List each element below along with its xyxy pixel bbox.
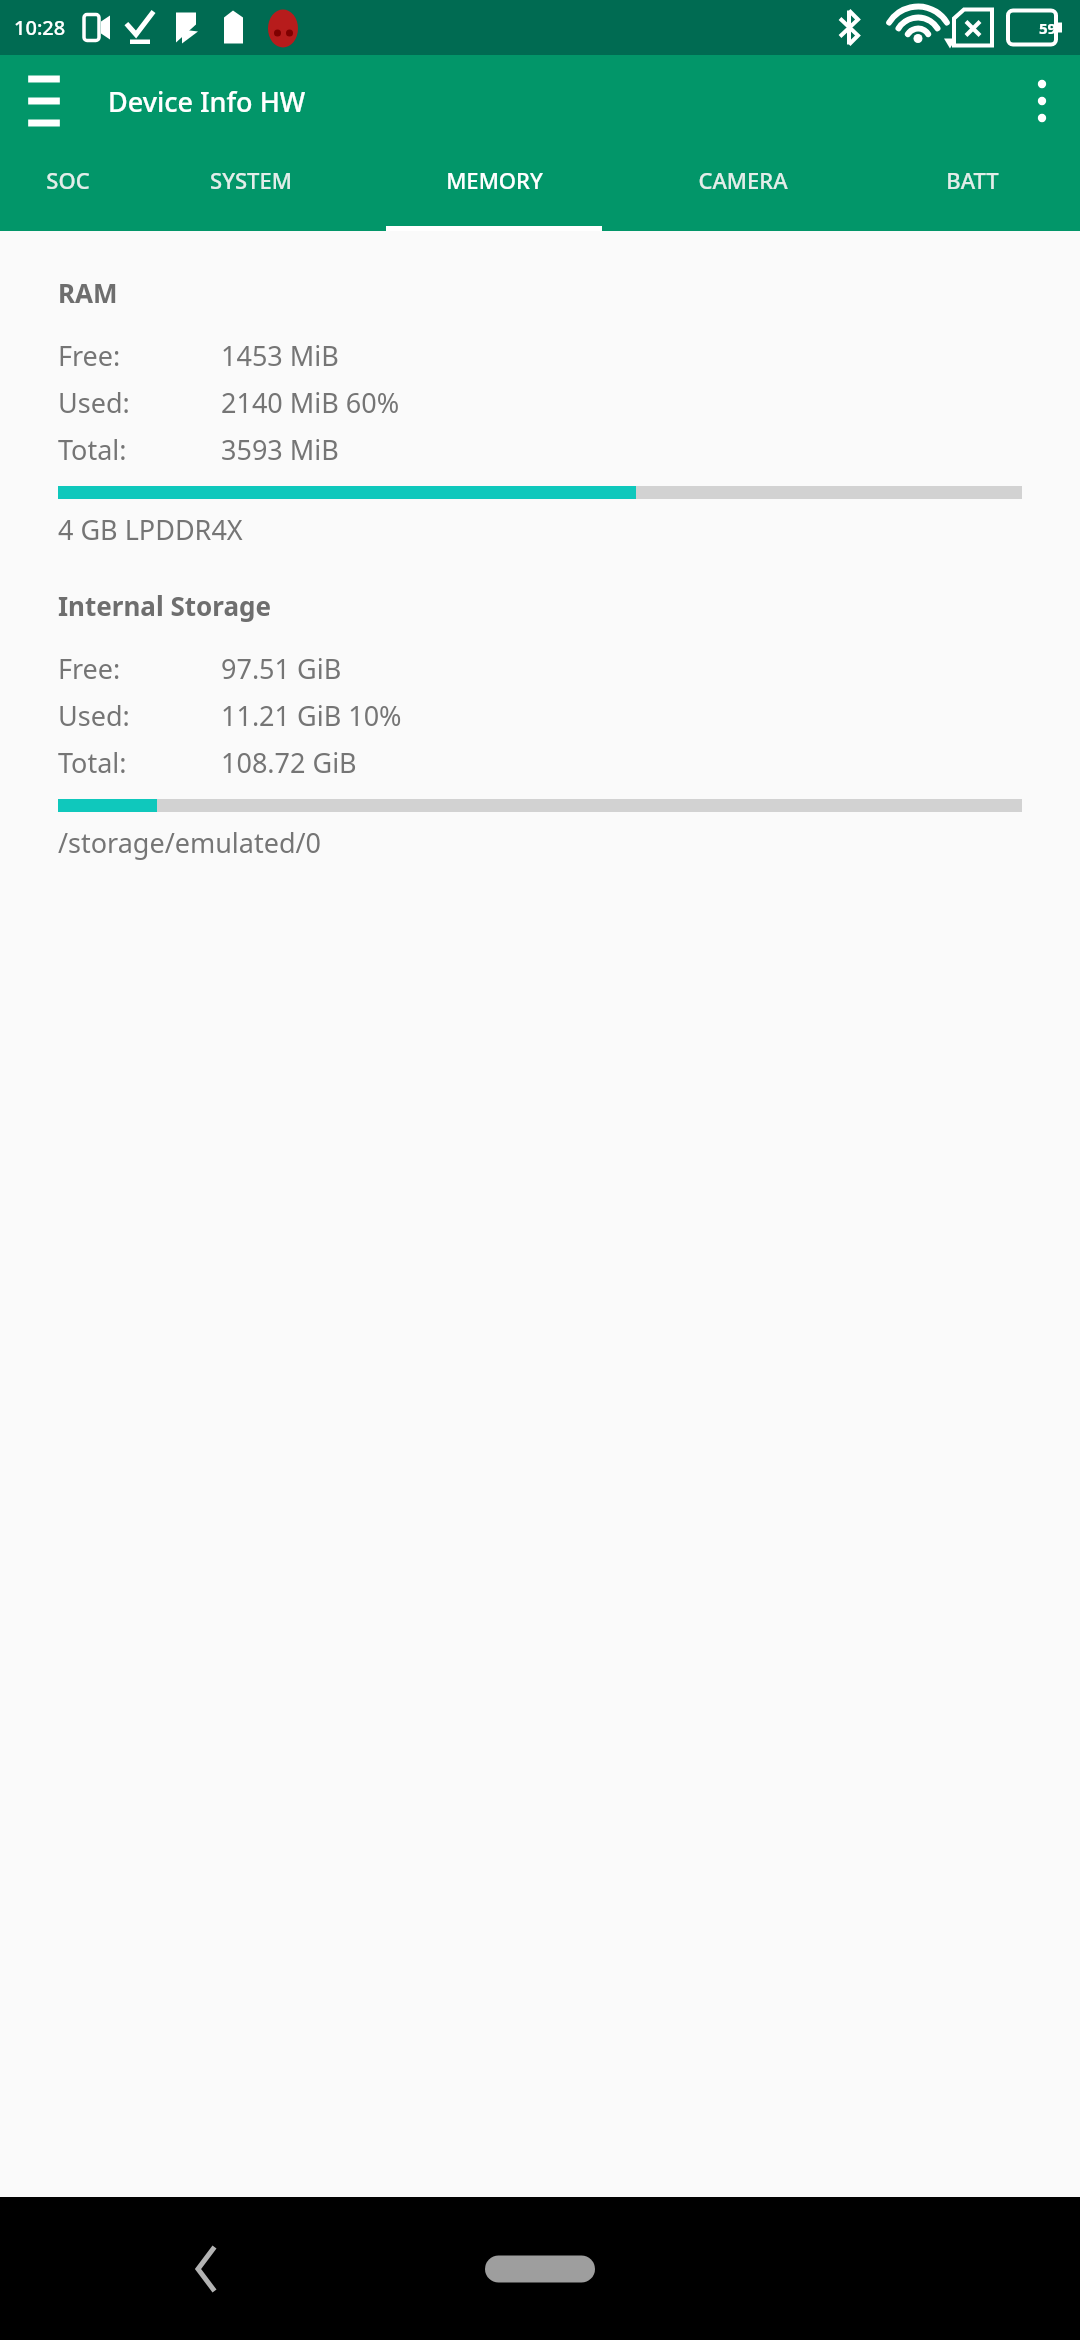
button[interactable]: BATT (864, 147, 1080, 231)
staticText: Total: (58, 744, 221, 781)
button[interactable]: More options (1018, 77, 1066, 125)
staticText: Used: (58, 697, 221, 734)
staticText: 4 GB LPDDR4X (58, 511, 243, 548)
button[interactable]: Home (485, 2249, 595, 2289)
staticText: Total: (58, 431, 221, 468)
staticText: CAMERA (698, 165, 788, 195)
staticText: Free: (58, 650, 221, 687)
staticText: 2140 MiB 60% (221, 384, 400, 421)
staticText: RAM (58, 275, 118, 310)
staticText: BATT (946, 165, 999, 195)
button[interactable]: SOC (0, 147, 135, 231)
staticText: 97.51 GiB (221, 650, 342, 687)
staticText: Internal Storage (58, 588, 271, 623)
staticText: 108.72 GiB (221, 744, 357, 781)
button[interactable]: Back (160, 2224, 250, 2314)
staticText: Device Info HW (108, 83, 306, 120)
button[interactable]: SYSTEM (135, 147, 367, 231)
staticText: 3593 MiB (221, 431, 339, 468)
button[interactable]: CAMERA (621, 147, 864, 231)
staticText: 59 (1039, 18, 1057, 38)
staticText: Free: (58, 337, 221, 374)
staticText: 11.21 GiB 10% (221, 697, 402, 734)
button[interactable]: MEMORY (367, 147, 621, 231)
staticText: /storage/emulated/0 (58, 824, 322, 861)
staticText: 10:28 (14, 14, 66, 41)
staticText: 1453 MiB (221, 337, 339, 374)
staticText: Used: (58, 384, 221, 421)
staticText: MEMORY (446, 165, 543, 195)
staticText: SYSTEM (210, 165, 292, 195)
staticText: SOC (46, 165, 90, 195)
button[interactable]: Open navigation drawer (20, 77, 68, 125)
